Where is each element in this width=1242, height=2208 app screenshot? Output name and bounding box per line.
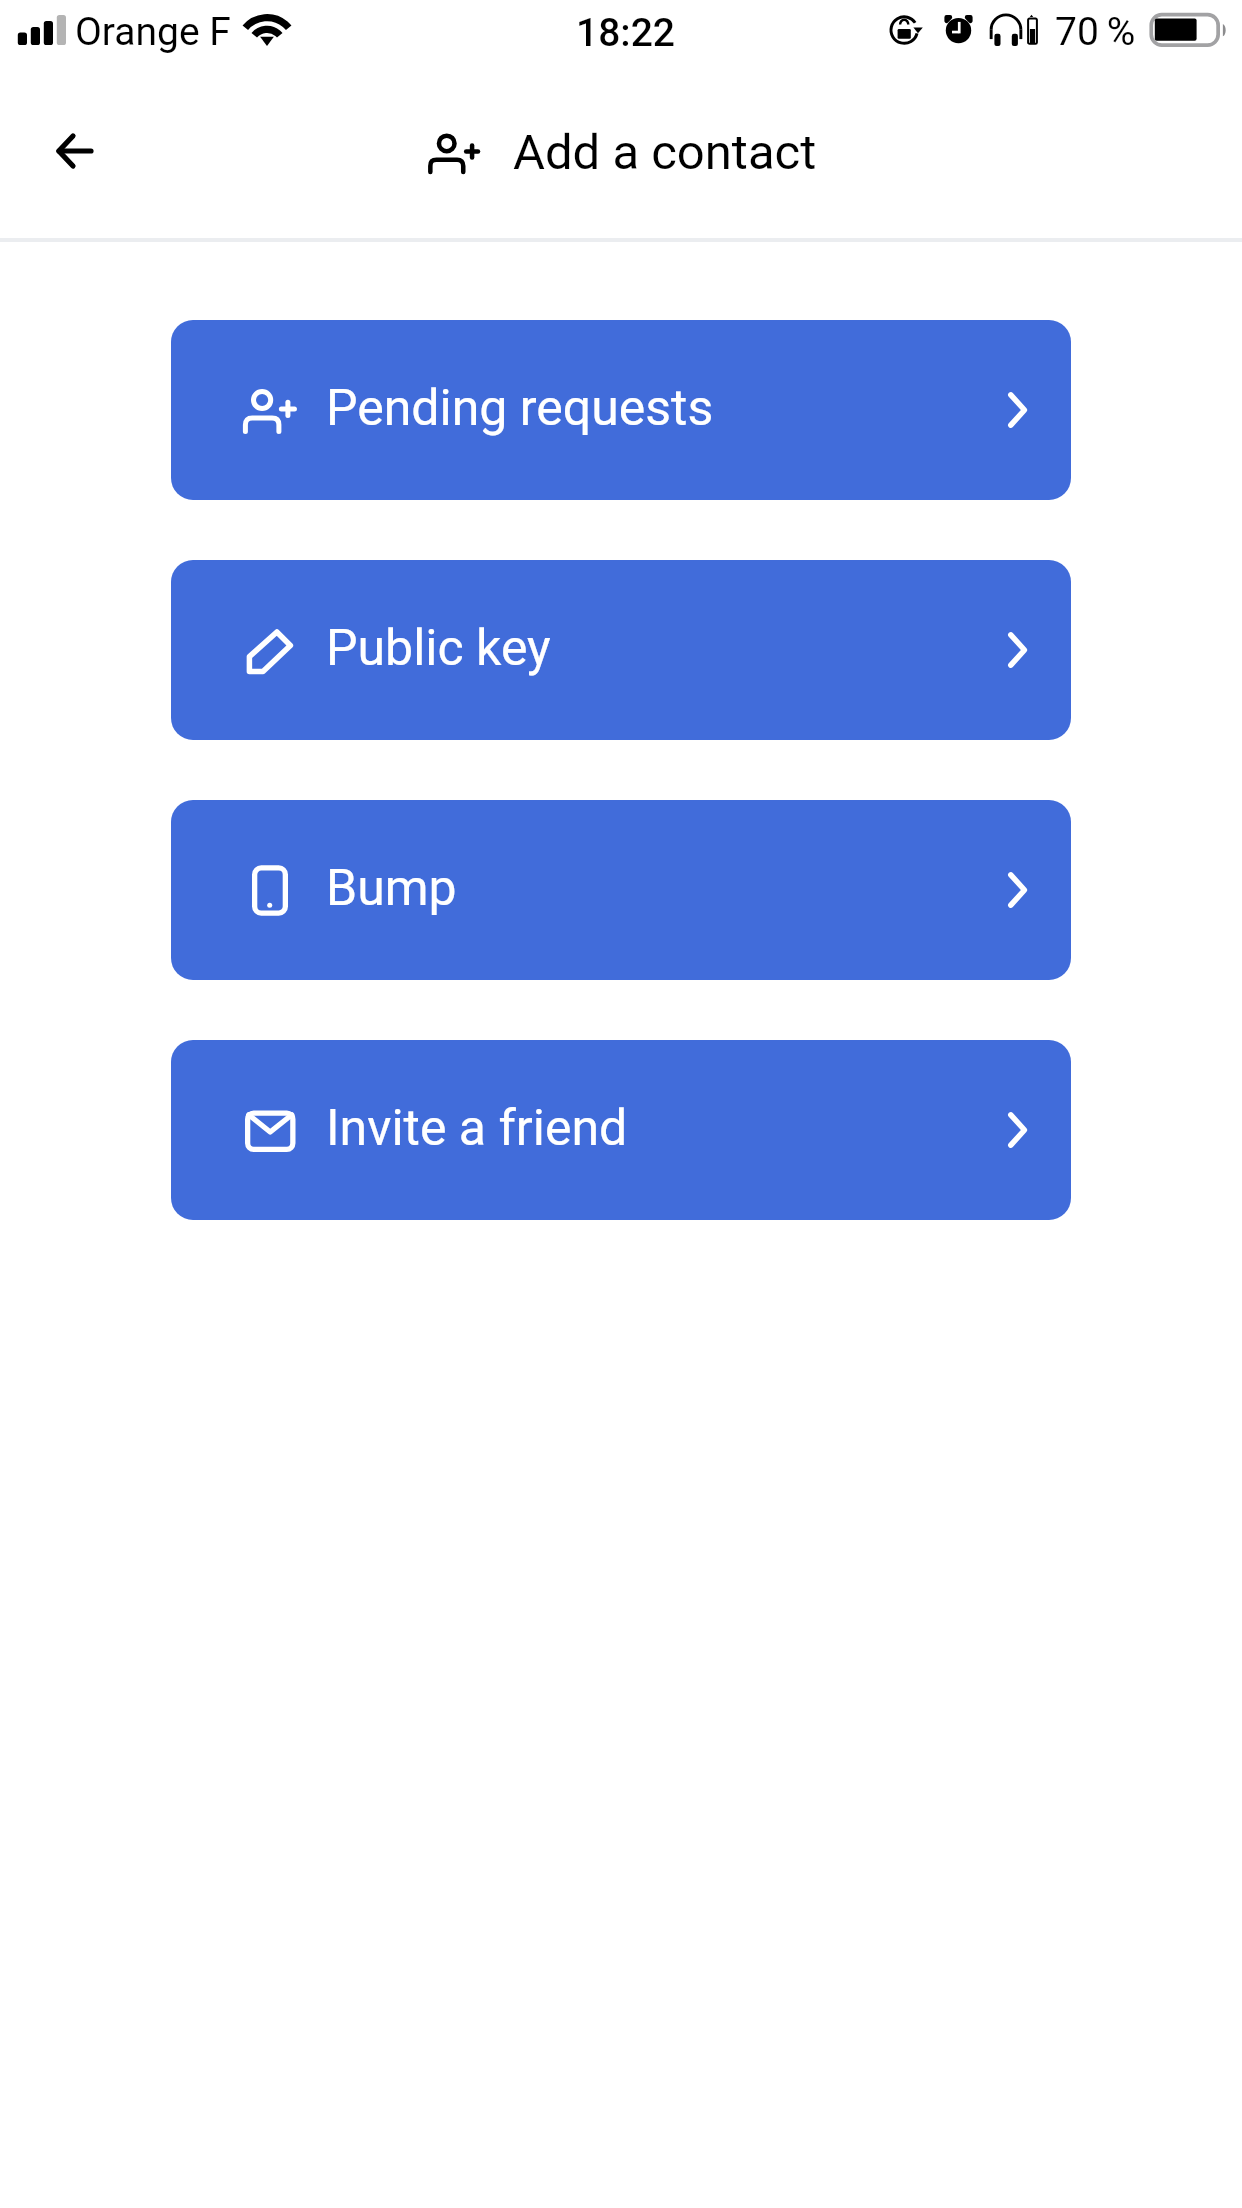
staticText: Invite a friend — [326, 1099, 628, 1158]
button[interactable]: Invite a friend — [171, 1040, 1071, 1220]
staticText: Pending requests — [326, 379, 714, 438]
staticText: Orange F — [75, 9, 231, 55]
staticText: 18:22 — [576, 10, 676, 56]
staticText: Public key — [326, 619, 551, 678]
staticText: Bump — [326, 859, 457, 918]
button[interactable]: Public key — [171, 560, 1071, 740]
staticText: 70 % — [1055, 9, 1136, 55]
button[interactable]: Bump — [171, 800, 1071, 980]
button[interactable]: Back — [20, 96, 130, 206]
button[interactable]: Pending requests — [171, 320, 1071, 500]
staticText: Add a contact — [513, 124, 817, 181]
